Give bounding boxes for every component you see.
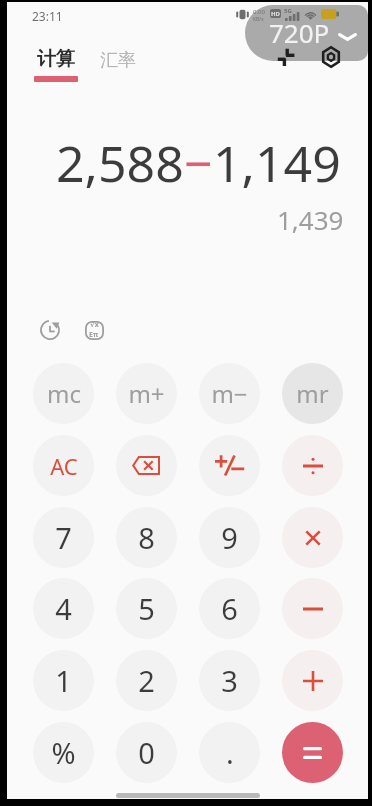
button[interactable]: Scientific mode (78, 314, 110, 346)
staticText: 5G (284, 7, 292, 15)
button[interactable]: Collapse (277, 47, 295, 67)
staticText: 0 (138, 733, 155, 772)
button[interactable]: . (199, 722, 260, 783)
staticText: 1,439 (277, 202, 344, 237)
button[interactable]: History (34, 314, 66, 346)
button[interactable]: m+ (116, 363, 177, 424)
staticText: 1 (55, 661, 72, 700)
staticText: mc (47, 377, 81, 410)
staticText: 8 (138, 518, 155, 557)
staticText: m− (211, 377, 248, 410)
staticText: 6 (221, 589, 238, 628)
staticText: 1,149 (213, 129, 341, 197)
button[interactable]: Settings (321, 46, 341, 68)
button[interactable] (282, 722, 343, 783)
staticText: 9 (221, 518, 238, 557)
button[interactable]: 2 (116, 650, 177, 711)
button[interactable]: mc (33, 363, 94, 424)
staticText: 5 (138, 589, 155, 628)
button[interactable] (282, 650, 343, 711)
staticText: mr (296, 377, 329, 410)
button[interactable] (282, 578, 343, 639)
staticText: 2,588 (56, 129, 184, 197)
button[interactable]: Screen recorder quality (245, 5, 368, 61)
button[interactable] (282, 435, 343, 496)
staticText: HD (271, 10, 280, 18)
staticText: 7 (55, 518, 72, 557)
button[interactable]: AC (33, 435, 94, 496)
button[interactable]: 3 (199, 650, 260, 711)
button[interactable]: Backspace (116, 435, 177, 496)
button[interactable]: 0 (116, 722, 177, 783)
staticText: 23:11 (32, 8, 63, 24)
button[interactable] (199, 435, 260, 496)
button[interactable]: 计算 (34, 47, 78, 82)
button[interactable]: 6 (199, 578, 260, 639)
button[interactable] (282, 507, 343, 568)
staticText: 0.00 (253, 8, 265, 16)
button[interactable]: mr (282, 363, 343, 424)
staticText: m+ (128, 377, 165, 410)
staticText: 2 (138, 661, 155, 700)
button[interactable]: m− (199, 363, 260, 424)
staticText: − (184, 129, 213, 197)
staticText: √x (90, 320, 99, 330)
staticText: 计算 (37, 47, 75, 71)
button[interactable]: 5 (116, 578, 177, 639)
staticText: 4 (55, 589, 72, 628)
button[interactable]: 4 (33, 578, 94, 639)
button[interactable]: 7 (33, 507, 94, 568)
button[interactable]: 9 (199, 507, 260, 568)
staticText: 720P (269, 15, 330, 50)
staticText: KB/s (253, 16, 264, 23)
button[interactable]: % (33, 722, 94, 783)
staticText: AC (50, 451, 78, 481)
staticText: . (226, 733, 234, 772)
staticText: 汇率 (100, 49, 136, 72)
button[interactable]: 8 (116, 507, 177, 568)
button[interactable]: 汇率 (100, 49, 136, 72)
staticText: 3 (221, 661, 238, 700)
staticText: % (51, 733, 76, 772)
staticText: Eπ (89, 330, 99, 340)
button[interactable]: 1 (33, 650, 94, 711)
